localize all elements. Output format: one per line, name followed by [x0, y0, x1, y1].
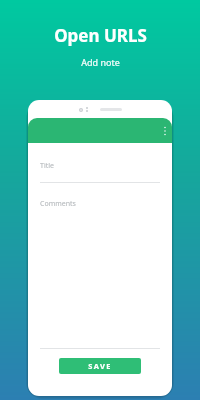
button[interactable]: Comments	[40, 199, 160, 348]
staticText: Open URLS	[54, 24, 147, 47]
staticText: Title	[40, 161, 54, 171]
button[interactable]: More options	[160, 121, 170, 141]
button[interactable]: SAVE	[59, 358, 141, 374]
button[interactable]: Title	[40, 161, 160, 183]
staticText: Add note	[81, 56, 120, 68]
staticText: SAVE	[88, 361, 112, 371]
staticText: Comments	[40, 199, 76, 209]
